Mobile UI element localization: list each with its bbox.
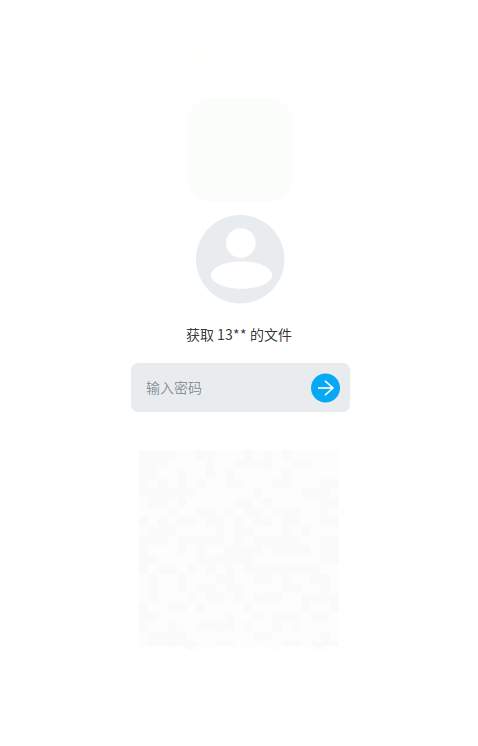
button[interactable]: 输入密码 xyxy=(131,363,350,412)
button[interactable]: 提交密码 xyxy=(311,373,340,402)
staticText: 输入密码 xyxy=(146,377,202,397)
staticText: 获取 13** 的文件 xyxy=(186,324,292,344)
